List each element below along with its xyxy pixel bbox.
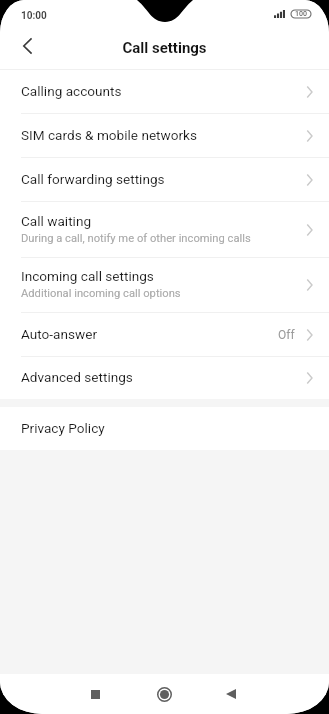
staticText: Call waiting [21, 213, 92, 229]
staticText: SIM cards & mobile networks [21, 127, 198, 143]
button[interactable]: Incoming call settings [0, 258, 329, 312]
staticText: During a call, notify me of other incomi… [21, 232, 251, 245]
button[interactable]: Auto-answer [0, 313, 329, 356]
button[interactable]: Recent apps [75, 674, 116, 714]
staticText: Incoming call settings [21, 268, 154, 284]
staticText: 100 [295, 10, 307, 18]
staticText: Call settings [122, 39, 207, 57]
button[interactable]: Advanced settings [0, 357, 329, 399]
button[interactable]: Privacy Policy [0, 407, 329, 450]
staticText: Privacy Policy [21, 420, 105, 436]
staticText: Additional incoming call options [21, 287, 181, 300]
button[interactable]: Call waiting [0, 202, 329, 257]
staticText: Calling accounts [21, 83, 122, 99]
button[interactable]: Call forwarding settings [0, 158, 329, 201]
button[interactable]: Calling accounts [0, 70, 329, 113]
staticText: Call forwarding settings [21, 171, 165, 187]
button[interactable]: Home [144, 674, 185, 714]
staticText: Off [278, 328, 295, 342]
button[interactable]: Back [210, 674, 251, 714]
staticText: 10:00 [21, 10, 47, 22]
button[interactable]: Back [8, 28, 46, 63]
staticText: Advanced settings [21, 369, 133, 385]
staticText: Auto-answer [21, 326, 98, 342]
button[interactable]: SIM cards & mobile networks [0, 114, 329, 157]
